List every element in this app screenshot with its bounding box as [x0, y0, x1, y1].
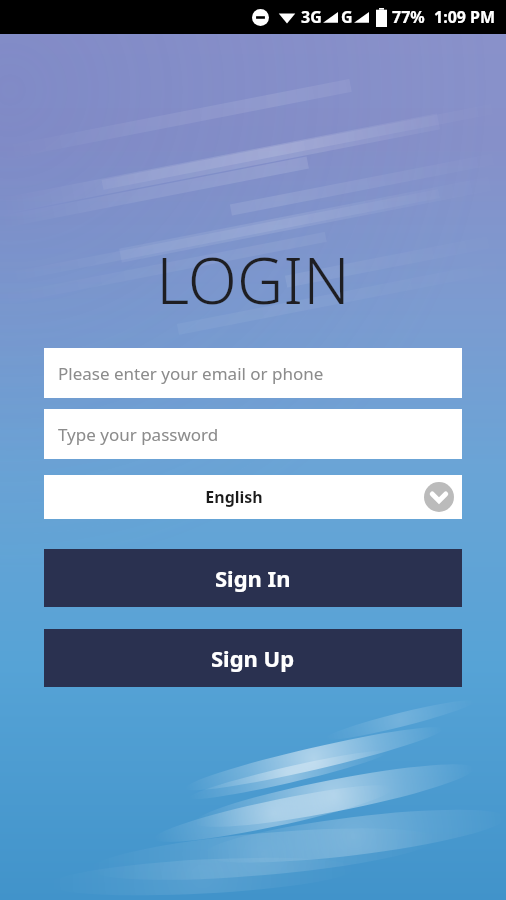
button[interactable]: English [44, 475, 462, 519]
staticText: Sign Up [211, 643, 295, 673]
staticText: Please enter your email or phone [58, 362, 324, 385]
staticText: LOGIN [0, 236, 506, 323]
staticText: 1:09 PM [434, 6, 496, 28]
staticText: English [44, 486, 424, 508]
staticText: Sign In [215, 563, 291, 593]
button[interactable]: Sign In [44, 549, 462, 607]
button[interactable]: Please enter your email or phone [44, 348, 462, 398]
staticText: G [341, 6, 353, 28]
button[interactable]: Type your password [44, 409, 462, 459]
staticText: 3G [301, 6, 322, 28]
staticText: Type your password [58, 423, 219, 446]
staticText: 77% [392, 6, 425, 28]
button[interactable]: Sign Up [44, 629, 462, 687]
